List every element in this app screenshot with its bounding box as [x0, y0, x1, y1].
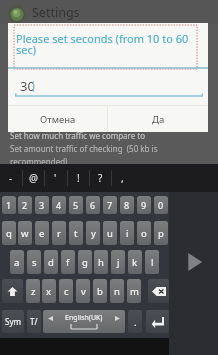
staticText: 3: [39, 199, 45, 211]
button[interactable]: o: [137, 221, 151, 245]
button[interactable]: i: [120, 221, 134, 245]
staticText: s: [32, 256, 37, 269]
button[interactable]: 0: [154, 196, 168, 214]
button[interactable]: c: [59, 279, 73, 303]
button[interactable]: 9: [137, 196, 151, 214]
staticText: r: [57, 227, 61, 240]
button[interactable]: y: [86, 221, 100, 245]
staticText: Sym: [5, 316, 21, 327]
button[interactable]: a: [10, 250, 24, 274]
button[interactable]: @: [22, 164, 44, 192]
button[interactable]: -: [0, 164, 22, 192]
button[interactable]: k: [128, 250, 142, 274]
staticText: 4: [56, 199, 62, 211]
staticText: b: [97, 285, 103, 298]
button[interactable]: g: [78, 250, 92, 274]
staticText: 5: [73, 199, 79, 211]
button[interactable]: s: [27, 250, 41, 274]
button[interactable]: 8: [120, 196, 134, 214]
staticText: T/: [30, 316, 38, 327]
button[interactable]: m: [127, 279, 141, 303]
staticText: v: [81, 285, 86, 298]
staticText: l: [151, 256, 154, 269]
button[interactable]: Space: [43, 310, 125, 333]
staticText: a: [14, 256, 20, 269]
staticText: @: [29, 171, 38, 185]
staticText: g: [82, 256, 88, 269]
button[interactable]: 2: [18, 196, 32, 214]
staticText: 0: [158, 199, 164, 211]
staticText: f: [66, 256, 70, 269]
staticText: ,: [121, 171, 124, 185]
button[interactable]: Play: [182, 250, 206, 274]
button[interactable]: q: [2, 221, 16, 245]
button[interactable]: Да: [108, 106, 208, 132]
staticText: 2: [22, 199, 28, 211]
button[interactable]: 3: [35, 196, 49, 214]
button[interactable]: 6: [86, 196, 100, 214]
button[interactable]: x: [42, 279, 56, 303]
button[interactable]: j: [111, 250, 125, 274]
staticText: z: [31, 285, 36, 298]
staticText: recommended): [10, 156, 68, 167]
staticText: m: [130, 285, 139, 298]
button[interactable]: l: [145, 250, 159, 274]
button[interactable]: p: [154, 221, 168, 245]
button[interactable]: 5: [69, 196, 83, 214]
staticText: p: [158, 227, 164, 240]
button[interactable]: u: [103, 221, 117, 245]
staticText: 8: [124, 199, 130, 211]
staticText: 6: [90, 199, 96, 211]
button[interactable]: Sym: [2, 310, 24, 333]
staticText: -: [9, 171, 13, 185]
button[interactable]: 7: [103, 196, 117, 214]
button[interactable]: Shift: [2, 279, 23, 303]
staticText: 7: [107, 199, 113, 211]
staticText: Отмена: [40, 113, 76, 126]
button[interactable]: Отмена: [8, 106, 107, 132]
staticText: sec): [16, 42, 37, 57]
button[interactable]: h: [94, 250, 108, 274]
button[interactable]: Period: [128, 310, 142, 333]
staticText: c: [64, 285, 69, 298]
staticText: x: [46, 285, 52, 298]
button[interactable]: r: [52, 221, 66, 245]
button[interactable]: n: [110, 279, 124, 303]
button[interactable]: z: [26, 279, 40, 303]
staticText: ?: [98, 171, 103, 185]
staticText: d: [48, 256, 54, 269]
staticText: Set amount traffic of checking (50 kb is: [10, 143, 158, 154]
button[interactable]: Enter: [146, 310, 169, 333]
button[interactable]: 4: [52, 196, 66, 214]
button[interactable]: d: [44, 250, 58, 274]
button[interactable]: 1: [2, 196, 16, 214]
staticText: Set how much traffic we compare to: [10, 130, 146, 141]
staticText: ': [54, 171, 57, 185]
staticText: o: [141, 227, 147, 240]
button[interactable]: Backspace: [148, 279, 169, 303]
button[interactable]: b: [93, 279, 107, 303]
button[interactable]: Input language: [27, 310, 41, 333]
staticText: English(UK): [65, 313, 103, 323]
button[interactable]: e: [35, 221, 49, 245]
staticText: !: [77, 171, 80, 185]
staticText: i: [126, 227, 129, 240]
staticText: Please set seconds (from 10 to 60: [16, 31, 189, 46]
staticText: w: [21, 227, 29, 240]
staticText: t: [74, 227, 78, 240]
staticText: n: [114, 285, 120, 298]
button[interactable]: !: [67, 164, 89, 192]
staticText: k: [132, 256, 138, 269]
button[interactable]: v: [76, 279, 90, 303]
button[interactable]: ': [44, 164, 66, 192]
staticText: e: [39, 227, 45, 240]
button[interactable]: t: [69, 221, 83, 245]
button[interactable]: ?: [89, 164, 111, 192]
button[interactable]: w: [18, 221, 32, 245]
button[interactable]: f: [61, 250, 75, 274]
button[interactable]: ,: [111, 164, 133, 192]
staticText: Settings: [32, 4, 80, 21]
staticText: q: [6, 227, 12, 240]
staticText: h: [98, 256, 104, 269]
staticText: j: [117, 256, 120, 269]
